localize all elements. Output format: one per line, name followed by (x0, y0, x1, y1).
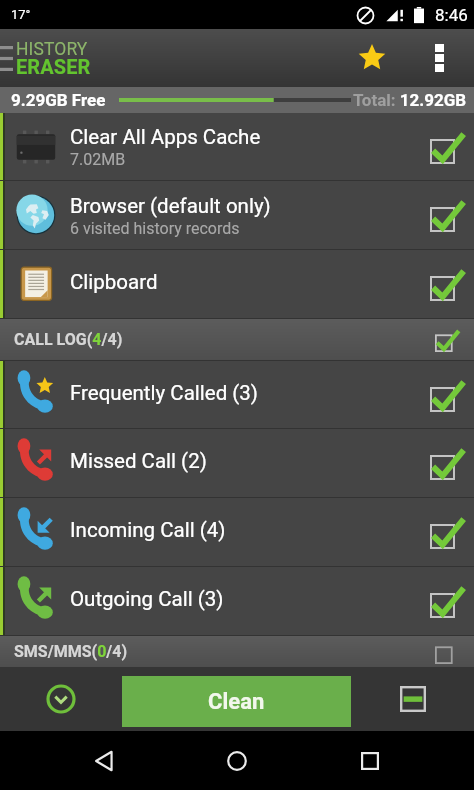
staticText: 7.02MB (70, 150, 126, 169)
staticText: Outgoing Call (3) (70, 587, 224, 611)
button[interactable]: Browser (default only) (0, 181, 474, 249)
button[interactable]: Favorites (339, 29, 405, 87)
button[interactable]: Recent apps (341, 732, 399, 790)
button[interactable]: More options (405, 29, 474, 87)
button[interactable]: Incoming Call (4) (0, 498, 474, 566)
button[interactable]: CALL LOG(4/4) (0, 319, 474, 360)
staticText: Incoming Call (4) (70, 518, 226, 542)
staticText: Frequently Called (3) (70, 381, 258, 405)
button[interactable]: Clean (122, 676, 351, 727)
staticText: ERASER (16, 55, 91, 78)
button[interactable]: SMS/MMS(0/4) (0, 636, 474, 667)
button[interactable]: Clear All Apps Cache (0, 113, 474, 180)
staticText: CALL LOG(4/4) (14, 330, 123, 349)
button[interactable]: Outgoing Call (3) (0, 567, 474, 635)
button[interactable]: Home (208, 732, 266, 790)
button[interactable]: Missed Call (2) (0, 429, 474, 497)
staticText: SMS/MMS(0/4) (14, 642, 128, 661)
staticText: Total: 12.92GB (353, 90, 467, 110)
staticText: HISTORY (16, 39, 88, 60)
button[interactable]: Expand list (0, 667, 122, 731)
other: Open navigation menu (0, 46, 13, 71)
staticText: Clear All Apps Cache (70, 125, 261, 149)
button[interactable]: Open navigation menu (0, 29, 99, 87)
staticText: Missed Call (2) (70, 449, 207, 473)
staticText: 6 visited history records (70, 219, 240, 238)
button[interactable]: Back (75, 732, 133, 790)
staticText: Clipboard (70, 270, 158, 294)
button[interactable]: Frequently Called (3) (0, 361, 474, 428)
staticText: Browser (default only) (70, 194, 271, 218)
staticText: 9.29GB Free (11, 90, 106, 110)
staticText: 8:46 (435, 5, 468, 25)
staticText: 17° (11, 7, 31, 22)
button[interactable]: Clipboard (0, 250, 474, 318)
staticText: Clean (208, 689, 265, 715)
button[interactable]: Toggle select all (351, 667, 474, 731)
